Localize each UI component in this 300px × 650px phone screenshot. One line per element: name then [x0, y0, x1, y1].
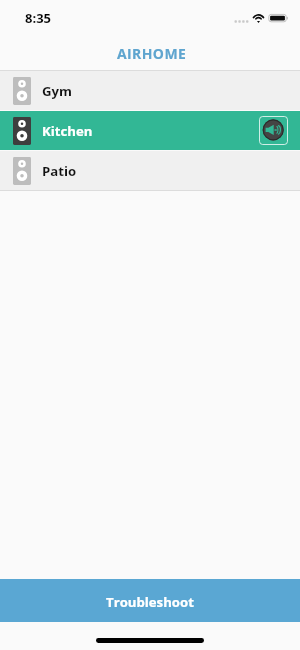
staticText: Patio [42, 162, 77, 180]
staticText: AIRHOME [117, 44, 187, 63]
button[interactable]: Gym [0, 71, 300, 110]
staticText: Gym [42, 82, 73, 100]
button[interactable]: Now playing [259, 116, 288, 145]
staticText: Kitchen [42, 122, 93, 140]
button[interactable]: Troubleshoot [0, 579, 300, 622]
button[interactable]: Patio [0, 151, 300, 190]
staticText: 8:35 [25, 9, 52, 27]
button[interactable]: Kitchen [0, 111, 300, 150]
staticText: Troubleshoot [106, 593, 194, 611]
